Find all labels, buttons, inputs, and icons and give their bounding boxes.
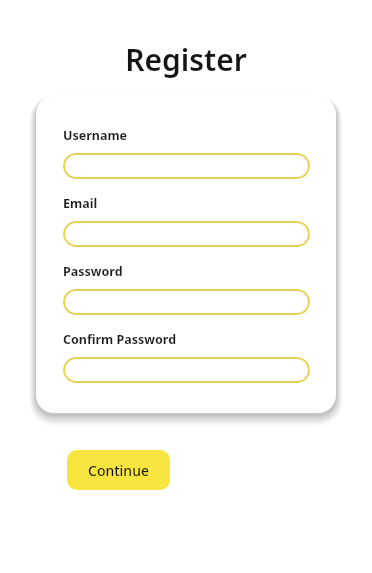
staticText: Confirm Password (63, 331, 177, 348)
staticText: Email (63, 195, 98, 212)
button[interactable]: Email (63, 221, 310, 247)
staticText: Password (63, 263, 123, 280)
staticText: Username (63, 127, 128, 144)
button[interactable]: Username (63, 153, 310, 179)
button[interactable]: Confirm Password (63, 357, 310, 383)
staticText: Register (0, 39, 372, 80)
button[interactable]: Password (63, 289, 310, 315)
button[interactable]: Continue (67, 450, 170, 490)
staticText: Continue (88, 461, 149, 480)
